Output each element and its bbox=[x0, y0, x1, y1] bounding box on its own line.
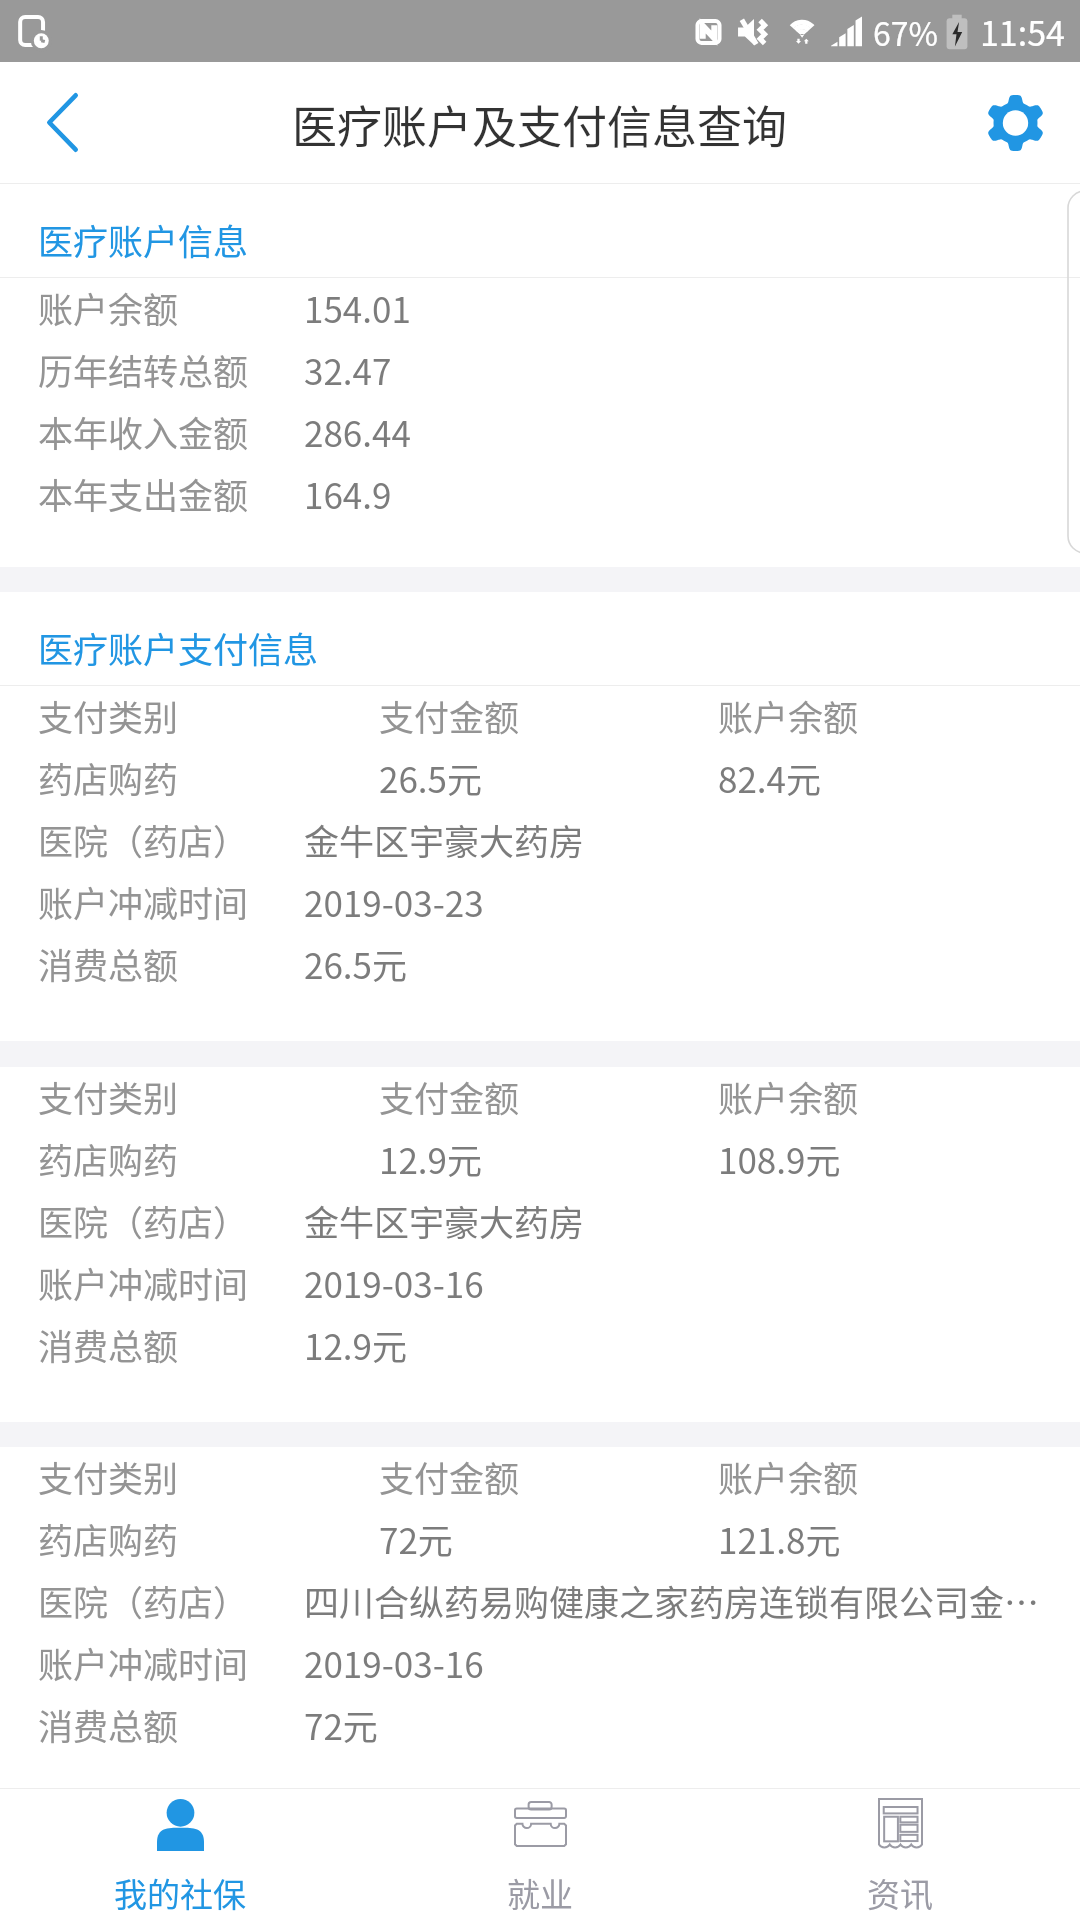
staticText: 本年支出金额 bbox=[38, 468, 304, 519]
staticText: 金牛区宇豪大药房 bbox=[304, 1195, 585, 1246]
staticText: 11:54 bbox=[980, 7, 1065, 56]
staticText: 本年收入金额 bbox=[38, 406, 304, 457]
button[interactable]: Settings bbox=[950, 62, 1080, 183]
staticText: 支付类别 bbox=[38, 690, 379, 741]
staticText: 账户余额 bbox=[38, 282, 304, 333]
staticText: 四川合纵药易购健康之家药房连锁有限公司金… bbox=[304, 1575, 1040, 1626]
staticText: 消费总额 bbox=[38, 938, 304, 989]
staticText: 医院（药店） bbox=[38, 1575, 304, 1626]
staticText: 账户冲减时间 bbox=[38, 1637, 304, 1688]
staticText: 支付类别 bbox=[38, 1451, 379, 1502]
staticText: 支付金额 bbox=[379, 1071, 718, 1122]
staticText: 2019-03-23 bbox=[304, 876, 484, 927]
staticText: 108.9元 bbox=[718, 1133, 841, 1184]
staticText: 药店购药 bbox=[38, 1133, 379, 1184]
staticText: 金牛区宇豪大药房 bbox=[304, 814, 585, 865]
staticText: 就业 bbox=[507, 1869, 573, 1917]
staticText: 72元 bbox=[379, 1513, 718, 1564]
button[interactable]: 我的社保 bbox=[0, 1789, 360, 1920]
staticText: 药店购药 bbox=[38, 752, 379, 803]
staticText: 账户余额 bbox=[718, 1451, 859, 1502]
staticText: 2019-03-16 bbox=[304, 1257, 484, 1308]
staticText: 账户冲减时间 bbox=[38, 1257, 304, 1308]
staticText: 支付金额 bbox=[379, 1451, 718, 1502]
staticText: 12.9元 bbox=[379, 1133, 718, 1184]
staticText: 支付类别 bbox=[38, 1071, 379, 1122]
staticText: 164.9 bbox=[304, 468, 392, 519]
staticText: 2019-03-16 bbox=[304, 1637, 484, 1688]
button[interactable]: 资讯 bbox=[720, 1789, 1080, 1920]
staticText: 医院（药店） bbox=[38, 1195, 304, 1246]
staticText: 12.9元 bbox=[304, 1319, 408, 1370]
staticText: 资讯 bbox=[867, 1869, 933, 1917]
staticText: 26.5元 bbox=[304, 938, 408, 989]
staticText: 支付金额 bbox=[379, 690, 718, 741]
staticText: 72元 bbox=[304, 1699, 378, 1750]
staticText: 账户冲减时间 bbox=[38, 876, 304, 927]
staticText: 历年结转总额 bbox=[38, 344, 304, 395]
staticText: 消费总额 bbox=[38, 1699, 304, 1750]
staticText: 医疗账户及支付信息查询 bbox=[292, 92, 788, 157]
button[interactable]: 就业 bbox=[360, 1789, 720, 1920]
staticText: 账户余额 bbox=[718, 1071, 859, 1122]
staticText: 32.47 bbox=[304, 344, 392, 395]
button[interactable]: Back bbox=[0, 62, 124, 183]
staticText: 药店购药 bbox=[38, 1513, 379, 1564]
staticText: 286.44 bbox=[304, 406, 411, 457]
staticText: 我的社保 bbox=[114, 1869, 246, 1917]
staticText: 医疗账户支付信息 bbox=[38, 622, 319, 673]
staticText: 154.01 bbox=[304, 282, 411, 333]
staticText: 67% bbox=[873, 9, 938, 55]
staticText: 121.8元 bbox=[718, 1513, 841, 1564]
staticText: 26.5元 bbox=[379, 752, 718, 803]
staticText: 消费总额 bbox=[38, 1319, 304, 1370]
staticText: 82.4元 bbox=[718, 752, 822, 803]
staticText: 医疗账户信息 bbox=[38, 214, 249, 265]
staticText: 医院（药店） bbox=[38, 814, 304, 865]
staticText: 账户余额 bbox=[718, 690, 859, 741]
